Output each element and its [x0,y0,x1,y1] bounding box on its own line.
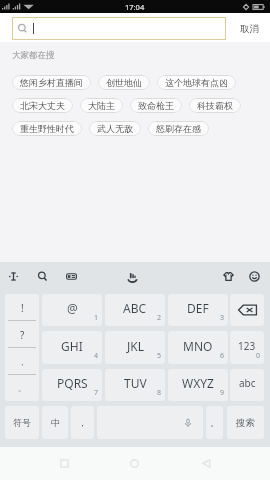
button[interactable]: 武人无敌 [89,121,141,136]
staticText: DEF [187,300,209,316]
staticText: ABC [123,300,147,316]
button[interactable]: 致命枪王 [130,98,182,113]
button[interactable]: WXYZ [168,369,228,401]
button[interactable]: ? [5,321,39,348]
button[interactable]: Emoji [244,266,264,286]
staticText: 怒刷存在感 [156,123,201,134]
button[interactable]: 中 [42,406,68,439]
button[interactable]: GHI [42,331,102,364]
staticText: 3 [220,313,225,323]
button[interactable]: Back [190,447,222,480]
button[interactable]: MNO [168,331,228,364]
staticText: GHI [61,338,83,354]
staticText: 4 [94,351,99,361]
staticText: 6 [220,351,225,361]
button[interactable]: Search [32,266,52,286]
staticText: 123 [238,339,256,353]
staticText: 大家都在搜 [12,50,55,61]
staticText: 1 [94,313,99,323]
staticText: 搜索 [236,417,255,429]
staticText: 符号 [13,417,31,428]
button[interactable]: 。 [206,406,223,439]
staticText: abc [239,376,256,390]
staticText: 这个地球有点凶 [165,77,228,88]
button[interactable]: 搜索 [227,406,264,439]
button[interactable]: 这个地球有点凶 [157,75,236,90]
button[interactable]: TUV [105,369,165,401]
button[interactable]: Text cursor [3,266,23,286]
button[interactable]: 。 [5,374,39,401]
button[interactable]: 北宋大丈夫 [12,98,73,113]
staticText: PQRS [57,375,88,391]
staticText: TUV [124,375,147,391]
button[interactable]: Home [118,447,150,480]
button[interactable]: 重生野性时代 [12,121,82,136]
staticText: ! [21,301,24,315]
staticText: 北宋大丈夫 [20,100,65,111]
button[interactable]: Space [97,406,203,439]
button[interactable]: 悠闲乡村直播间 [12,75,91,90]
button[interactable]: JKL [105,331,165,364]
staticText: 中 [51,417,60,428]
button[interactable]: 取消 [230,17,268,40]
staticText: 。 [210,417,219,428]
staticText: 创世地仙 [106,77,142,88]
staticText: 2 [157,313,162,323]
button[interactable]: DEF [168,294,228,326]
staticText: 悠闲乡村直播间 [20,77,83,88]
button[interactable]: Clipboard [61,266,81,286]
staticText: 5 [157,351,162,361]
button[interactable]: abc [230,369,264,401]
staticText: 取消 [240,23,259,35]
button[interactable]: 123 [230,331,264,364]
button[interactable]: Recents [48,447,80,480]
staticText: ， [78,417,87,428]
button[interactable]: Handwriting [122,266,142,286]
staticText: 武人无敌 [97,123,133,134]
staticText: JKL [127,338,144,354]
staticText: ? [20,328,25,342]
button[interactable]: 创世地仙 [98,75,150,90]
staticText: ， [18,357,26,367]
staticText: MNO [183,338,213,354]
button[interactable]: @ [42,294,102,326]
button[interactable]: 科技霸权 [189,98,241,113]
button[interactable]: Backspace [230,294,264,326]
button[interactable]: ABC [105,294,165,326]
staticText: 9 [220,388,225,398]
staticText: 0 [256,351,261,361]
staticText: 致命枪王 [138,100,174,111]
button[interactable]: 大陆主 [80,98,123,113]
button[interactable]: ， [5,348,39,375]
staticText: 科技霸权 [197,100,233,111]
staticText: WXYZ [182,375,214,391]
staticText: 8 [157,388,162,398]
button[interactable] [12,17,226,40]
staticText: 大陆主 [88,100,115,111]
button[interactable]: ， [71,406,94,439]
staticText: 重生野性时代 [20,123,74,134]
staticText: 17:04 [125,2,145,12]
button[interactable]: ! [5,294,39,321]
button[interactable]: PQRS [42,369,102,401]
button[interactable]: 符号 [5,406,39,439]
staticText: @ [67,300,78,316]
staticText: 7 [94,388,99,398]
button[interactable]: Theme [218,266,238,286]
staticText: 。 [18,383,26,393]
button[interactable]: 怒刷存在感 [148,121,209,136]
